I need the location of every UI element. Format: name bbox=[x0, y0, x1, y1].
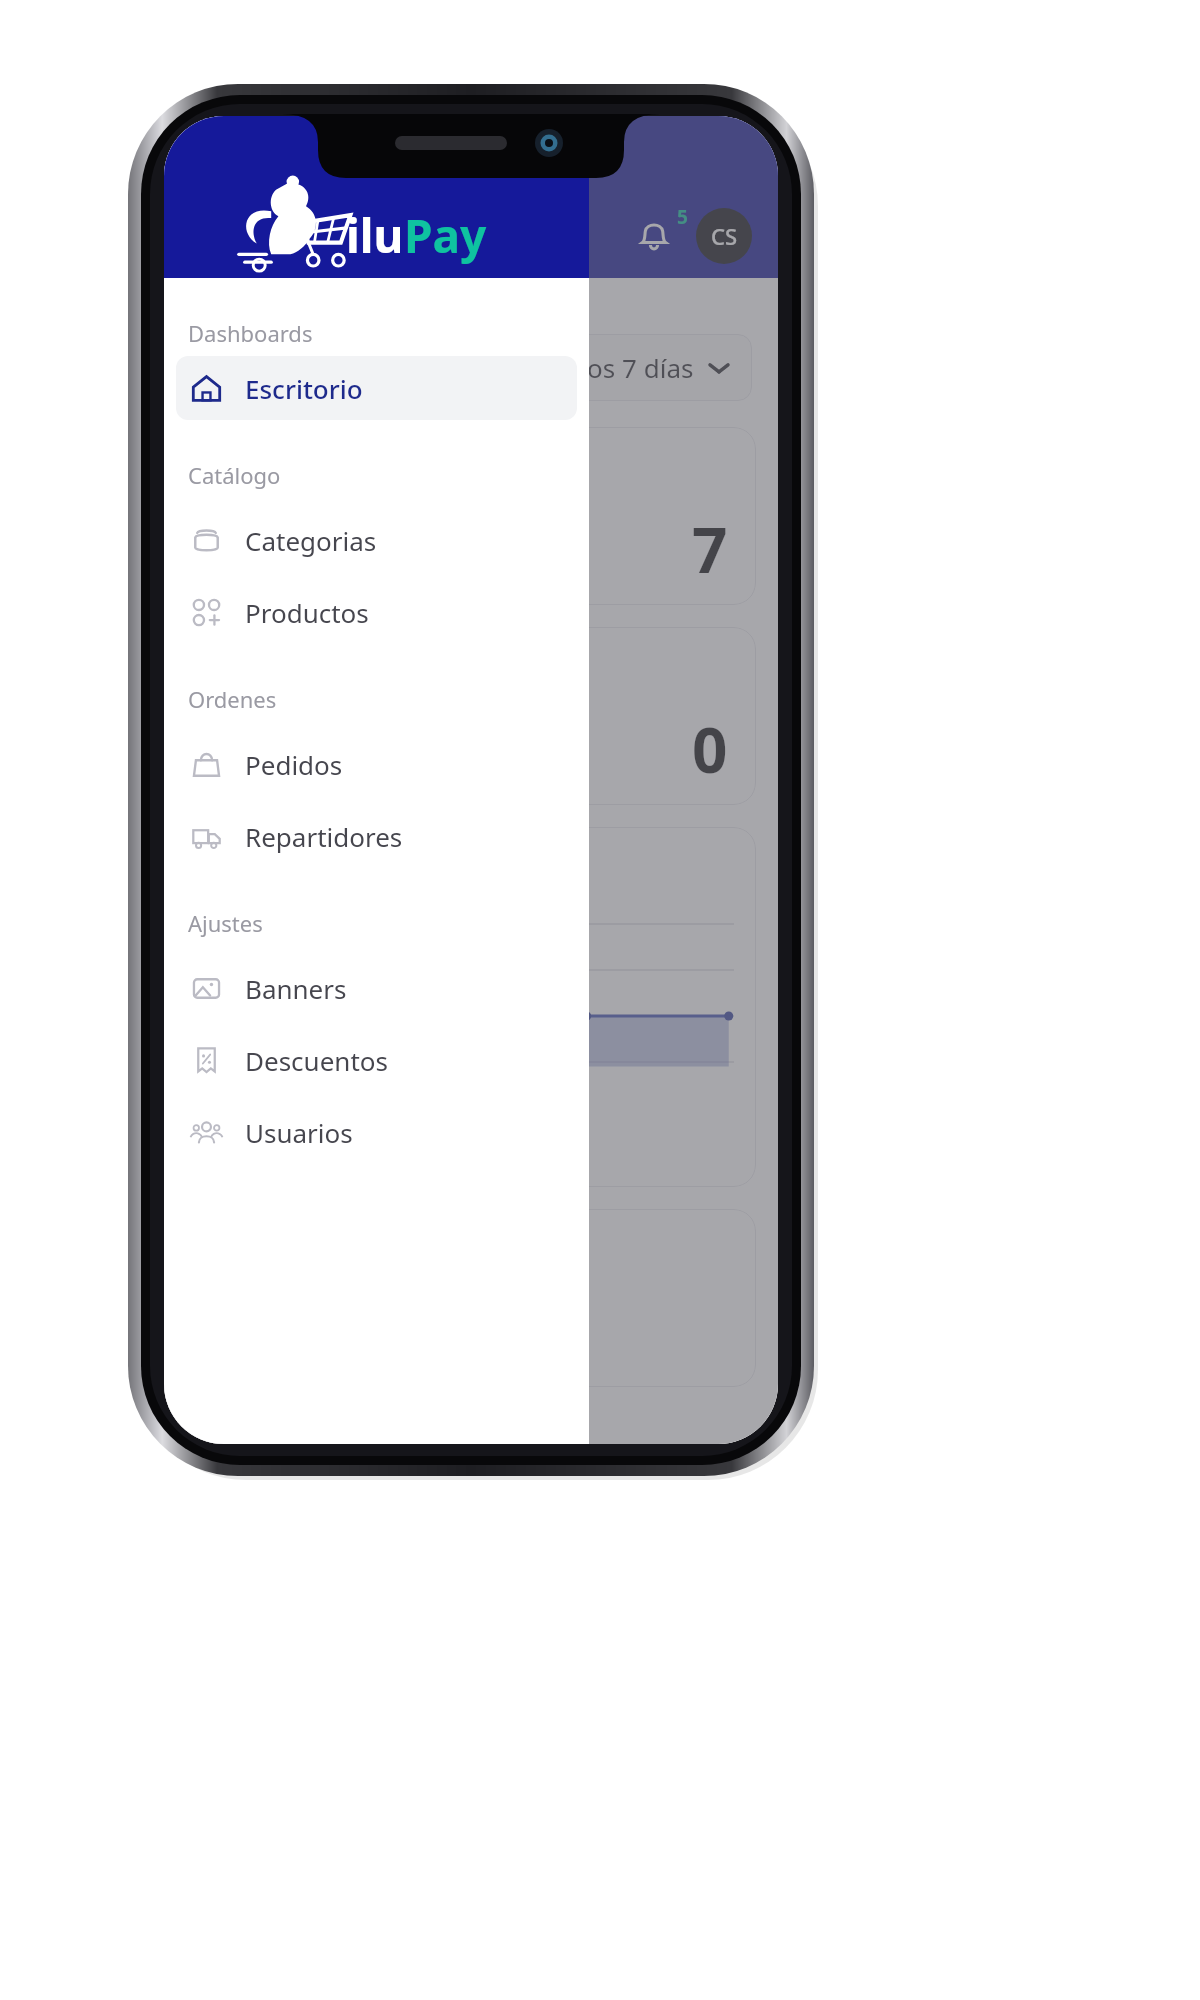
staticText: Pedidos bbox=[245, 747, 343, 782]
staticText: Ajustes bbox=[188, 908, 263, 938]
staticText: 7 bbox=[692, 507, 728, 591]
staticText: Pay bbox=[404, 204, 487, 267]
staticText: ilu bbox=[346, 204, 404, 267]
staticText: Escritorio bbox=[245, 371, 363, 406]
staticText: 5 bbox=[677, 204, 688, 230]
button[interactable]: Productos bbox=[176, 580, 577, 644]
button[interactable]: Descuentos bbox=[176, 1028, 577, 1092]
staticText: Repartidores bbox=[245, 819, 403, 854]
button[interactable]: CS bbox=[696, 208, 752, 264]
staticText: Categorias bbox=[245, 523, 377, 558]
button[interactable]: Pedidos bbox=[176, 732, 577, 796]
staticText: Pedidos bbox=[210, 451, 300, 484]
staticText: Catálogo bbox=[188, 460, 281, 490]
staticText: Dashboards bbox=[188, 318, 313, 348]
button[interactable]: Banners bbox=[176, 956, 577, 1020]
staticText: Ordenes bbox=[188, 684, 277, 714]
button[interactable]: Usuarios registrados bbox=[186, 1209, 756, 1387]
button[interactable]: Pedidos bbox=[186, 427, 756, 605]
button[interactable]: Usuarios bbox=[176, 1100, 577, 1164]
button[interactable]: Escritorio bbox=[176, 356, 577, 420]
staticText: Banners bbox=[245, 971, 347, 1006]
button[interactable]: Notificaciones bbox=[626, 208, 682, 264]
staticText: Pedidos entregados bbox=[208, 849, 443, 883]
button[interactable]: Categorias bbox=[176, 508, 577, 572]
staticText: 0 bbox=[692, 707, 728, 791]
button[interactable]: Últimos 7 días bbox=[499, 334, 752, 401]
staticText: Descuentos bbox=[245, 1043, 388, 1078]
staticText: CS bbox=[711, 221, 738, 251]
button[interactable]: Entregados bbox=[186, 627, 756, 805]
button[interactable]: Repartidores bbox=[176, 804, 577, 868]
staticText: Últimos 7 días bbox=[521, 350, 694, 385]
staticText: Productos bbox=[245, 595, 369, 630]
staticText: Usuarios bbox=[245, 1115, 353, 1150]
